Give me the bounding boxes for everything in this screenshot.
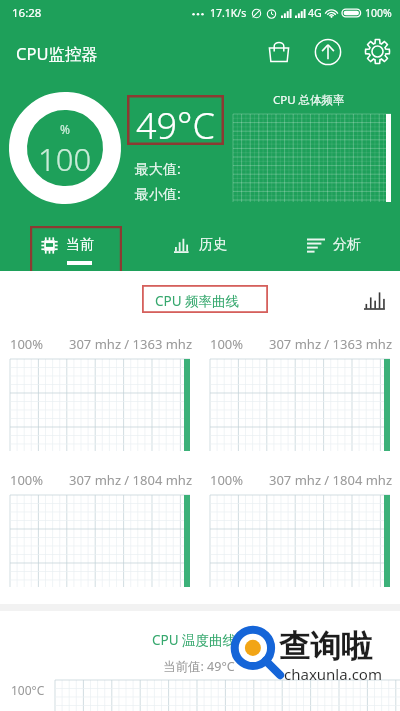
staticText: 当前值: 49°C	[163, 658, 235, 675]
staticText: 307 mhz / 1363 mhz	[269, 335, 393, 353]
staticText: 100%	[10, 471, 44, 489]
button[interactable]: 历史	[134, 213, 267, 271]
staticText: 307 mhz / 1363 mhz	[69, 335, 193, 353]
staticText: 4G	[308, 6, 322, 20]
staticText: %	[60, 121, 70, 137]
staticText: 16:28	[12, 5, 42, 21]
staticText: 17.1K/s	[210, 6, 247, 20]
button[interactable]: Settings	[354, 28, 400, 75]
staticText: 历史	[199, 236, 227, 254]
staticText: 100%	[10, 335, 44, 353]
staticText: 100°C	[11, 682, 45, 698]
staticText: 查询啦	[279, 627, 372, 666]
button[interactable]: 分析	[267, 213, 400, 271]
staticText: 100%	[210, 335, 244, 353]
staticText: CPU 频率曲线	[155, 292, 240, 310]
button[interactable]: 当前	[0, 213, 134, 271]
staticText: CPU 总体频率	[273, 92, 345, 108]
button[interactable]: Boost	[304, 28, 351, 75]
staticText: 分析	[333, 236, 361, 254]
button[interactable]: Chart view	[355, 281, 395, 321]
staticText: 100%	[210, 471, 244, 489]
staticText: 49°C	[136, 101, 215, 150]
button[interactable]: Shop	[255, 28, 302, 75]
staticText: chaxunla.com	[284, 664, 382, 684]
staticText: 当前	[66, 236, 94, 254]
staticText: 100	[38, 138, 92, 180]
staticText: 307 mhz / 1804 mhz	[69, 471, 193, 489]
staticText: 100%	[365, 6, 392, 20]
staticText: CPU监控器	[16, 42, 98, 65]
staticText: 最小值:	[135, 184, 181, 203]
staticText: 307 mhz / 1804 mhz	[269, 471, 393, 489]
staticText: 最大值:	[135, 159, 181, 178]
staticText: CPU 温度曲线	[152, 631, 237, 649]
